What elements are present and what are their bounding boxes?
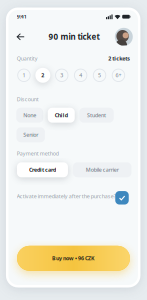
- button[interactable]: 5: [92, 68, 107, 83]
- staticText: Senior: [23, 131, 38, 138]
- staticText: None: [23, 112, 36, 119]
- button[interactable]: 2: [35, 68, 50, 83]
- button[interactable]: Buy now • 96 CZK: [17, 246, 130, 271]
- staticText: Payment method: [17, 150, 59, 157]
- button[interactable]: Credit card: [17, 162, 68, 177]
- staticText: 90 min ticket: [48, 31, 99, 42]
- staticText: Child: [55, 112, 68, 119]
- button[interactable]: 6+: [111, 68, 126, 83]
- staticText: 4: [79, 72, 82, 79]
- staticText: Discount: [17, 96, 39, 103]
- staticText: 2: [41, 72, 44, 79]
- staticText: Student: [87, 112, 106, 119]
- button[interactable]: Profile: [115, 28, 133, 46]
- button[interactable]: None: [16, 108, 43, 123]
- button[interactable]: Mobile carrier: [73, 162, 131, 177]
- button[interactable]: Student: [79, 108, 114, 123]
- button[interactable]: Child: [48, 108, 75, 123]
- button[interactable]: Activate immediately after the purchase: [115, 191, 129, 205]
- staticText: Mobile carrier: [86, 166, 119, 173]
- staticText: 2 tickets: [108, 55, 130, 62]
- button[interactable]: 1: [16, 68, 31, 83]
- staticText: Quantity: [17, 55, 38, 62]
- button[interactable]: Senior: [16, 127, 45, 142]
- staticText: Buy now • 96 CZK: [52, 255, 95, 262]
- staticText: 1: [22, 72, 25, 79]
- staticText: Activate immediately after the purchase?: [17, 193, 116, 200]
- staticText: 5: [98, 72, 101, 79]
- button[interactable]: 3: [54, 68, 69, 83]
- button[interactable]: Back: [15, 31, 27, 43]
- staticText: Credit card: [29, 166, 56, 173]
- button[interactable]: 4: [73, 68, 88, 83]
- staticText: 6+: [115, 72, 121, 79]
- staticText: 9:41: [17, 13, 27, 20]
- staticText: 3: [60, 72, 63, 79]
